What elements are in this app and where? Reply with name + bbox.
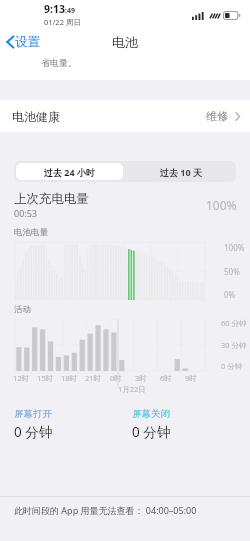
button[interactable]: 电池健康 xyxy=(0,100,250,132)
staticText: 0% xyxy=(224,289,236,300)
staticText: 0 分钟 xyxy=(132,423,171,441)
staticText: 电池电量 xyxy=(14,227,48,238)
staticText: 活动 xyxy=(14,304,31,315)
button[interactable]: 设置 xyxy=(0,30,48,54)
staticText: 过去 10 天 xyxy=(160,166,202,178)
staticText: 50% xyxy=(224,266,240,277)
staticText: 100% xyxy=(224,242,245,253)
staticText: 屏幕关闭 xyxy=(132,408,170,420)
staticText: 电池健康 xyxy=(12,109,60,124)
staticText: 省电量。 xyxy=(41,57,77,68)
staticText: 设置 xyxy=(15,34,40,50)
button[interactable]: 过去 24 小时 xyxy=(16,163,123,180)
button[interactable]: 过去 10 天 xyxy=(125,161,236,182)
staticText: 21时 xyxy=(85,373,102,383)
staticText: 3时 xyxy=(135,373,147,383)
staticText: 6时 xyxy=(160,373,172,383)
staticText: 15时 xyxy=(37,373,54,383)
staticText: 18时 xyxy=(61,373,78,383)
staticText: 1月22日 xyxy=(118,384,146,394)
staticText: 此时间段的 App 用量无法查看： 04:00–05:00 xyxy=(14,504,197,516)
staticText: 0时 xyxy=(110,373,122,383)
staticText: 维修 xyxy=(206,109,228,123)
staticText: 01/22 周日 xyxy=(44,17,81,27)
staticText: 电池 xyxy=(112,34,138,50)
staticText: 12时 xyxy=(13,373,30,383)
staticText: :49 xyxy=(65,6,75,16)
staticText: 过去 24 小时 xyxy=(44,166,95,178)
staticText: 屏幕打开 xyxy=(14,408,52,420)
staticText: 上次充电电量 xyxy=(14,191,89,207)
staticText: 9:13 xyxy=(44,2,65,16)
staticText: 00:53 xyxy=(14,207,38,219)
staticText: 60 分钟 xyxy=(221,318,247,328)
staticText: 9时 xyxy=(185,373,197,383)
staticText: 30 分钟 xyxy=(221,340,247,350)
staticText: 100% xyxy=(206,197,237,213)
staticText: 0 分钟 xyxy=(14,423,53,441)
staticText: 0 分钟 xyxy=(221,361,243,371)
